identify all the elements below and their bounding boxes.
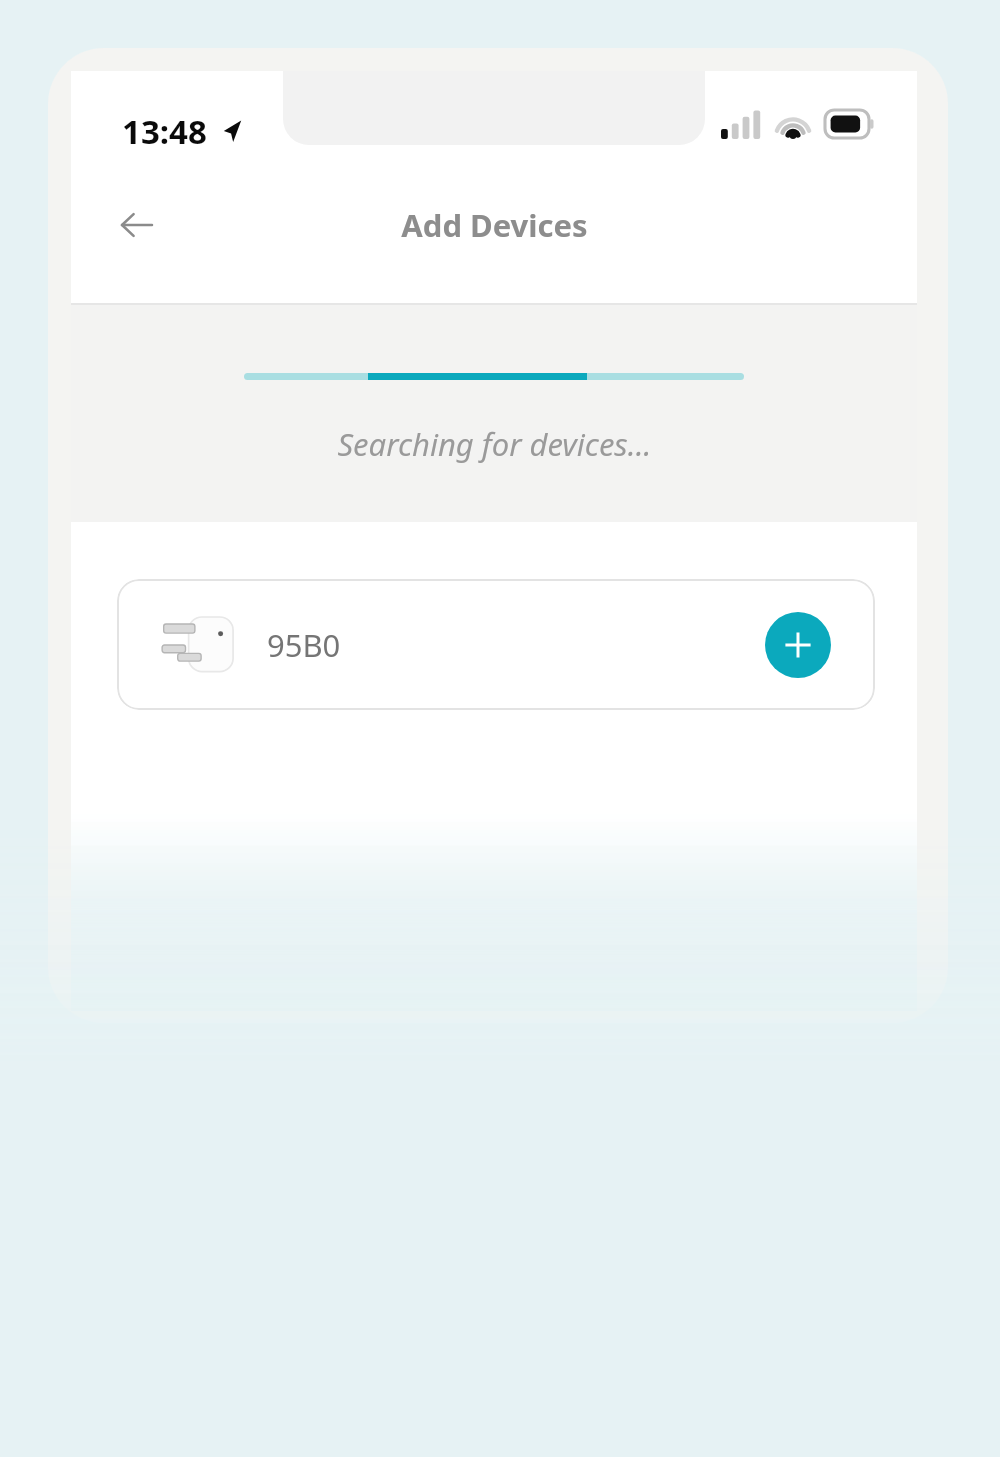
button[interactable]: 95B0 (117, 579, 875, 710)
button[interactable]: Back (107, 195, 167, 255)
button[interactable]: Add device 95B0 (765, 612, 831, 678)
staticText: Add Devices (401, 204, 588, 246)
staticText: 95B0 (267, 624, 341, 666)
staticText: 13:48 (122, 109, 207, 154)
staticText: Searching for devices... (337, 423, 652, 465)
